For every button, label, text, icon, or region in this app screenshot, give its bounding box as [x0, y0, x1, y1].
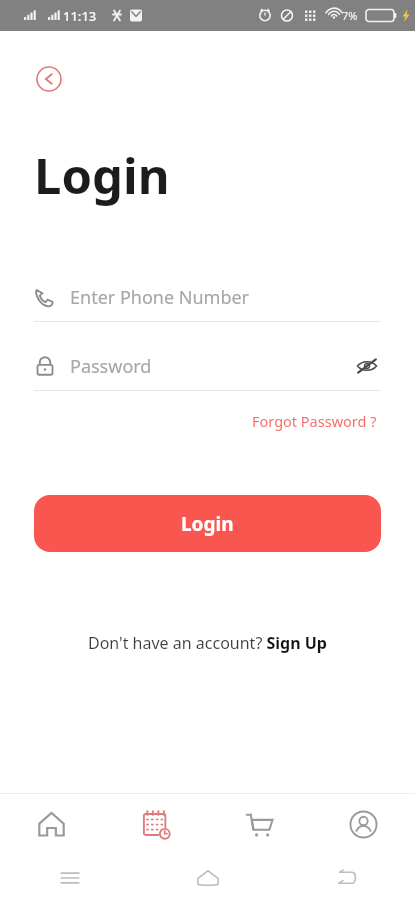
button[interactable]: Back: [34, 64, 64, 94]
button[interactable]: Don't have an account? Sign Up: [82, 626, 333, 660]
staticText: Forgot Password ?: [252, 411, 377, 431]
staticText: 11:13: [63, 7, 97, 25]
staticText: Enter Phone Number: [70, 285, 381, 310]
button[interactable]: Enter Phone Number: [34, 275, 381, 319]
button[interactable]: Calendar: [103, 794, 207, 855]
button[interactable]: Toggle password visibility: [353, 352, 381, 380]
button[interactable]: Login: [34, 495, 381, 552]
button[interactable]: Recents: [0, 855, 139, 900]
staticText: Don't have an account? Sign Up: [88, 632, 327, 654]
button[interactable]: Back: [277, 855, 415, 900]
button[interactable]: Password: [34, 344, 381, 388]
staticText: Login: [34, 142, 170, 209]
button[interactable]: Home: [139, 855, 277, 900]
button[interactable]: Profile: [311, 794, 415, 855]
button[interactable]: Cart: [207, 794, 311, 855]
button[interactable]: Home: [0, 794, 103, 855]
staticText: Password: [70, 354, 353, 379]
staticText: 7%: [342, 8, 358, 23]
staticText: Login: [181, 511, 234, 537]
button[interactable]: Forgot Password ?: [248, 407, 381, 435]
